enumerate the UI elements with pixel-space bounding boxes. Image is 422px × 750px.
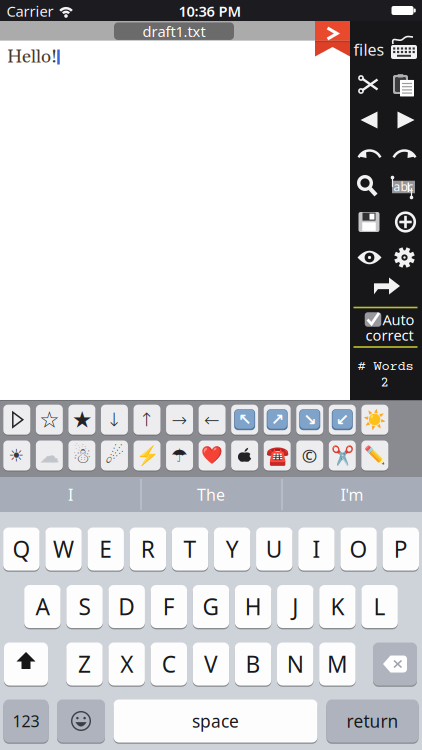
button[interactable]: Move right	[166, 405, 193, 435]
staticText: ⚡	[135, 445, 158, 466]
button[interactable]: Z	[66, 642, 103, 685]
button[interactable]: Y	[214, 527, 250, 570]
button[interactable]: files	[349, 38, 389, 60]
staticText: G	[202, 591, 219, 621]
button[interactable]: Preview	[357, 250, 381, 264]
button[interactable]: 123	[3, 699, 48, 742]
button[interactable]: Bookmark	[315, 21, 350, 57]
button[interactable]: Emoji	[57, 699, 105, 742]
button[interactable]: Favorite	[36, 405, 63, 435]
button[interactable]: Scissors	[329, 440, 356, 470]
button[interactable]: Move down	[101, 405, 128, 435]
staticText: ☀️	[363, 409, 386, 430]
button[interactable]: space	[113, 699, 317, 742]
button[interactable]: I	[5, 478, 135, 511]
button[interactable]: Brightness	[361, 405, 388, 435]
button[interactable]: Jump up right	[264, 405, 291, 435]
staticText: L	[374, 591, 386, 621]
button[interactable]: Add	[394, 211, 416, 233]
staticText: X	[120, 649, 133, 679]
button[interactable]: Umbrella	[166, 440, 193, 470]
button[interactable]: I	[298, 527, 335, 570]
button[interactable]: Heart	[199, 440, 226, 470]
button[interactable]: R	[130, 527, 166, 570]
staticText: ✂️	[331, 445, 354, 466]
button[interactable]: Telephone	[264, 440, 291, 470]
button[interactable]: Previous	[360, 111, 377, 128]
button[interactable]: Settings	[393, 246, 415, 268]
button[interactable]: The	[146, 478, 276, 511]
button[interactable]: C	[151, 642, 187, 685]
button[interactable]: G	[193, 585, 229, 628]
staticText: correct	[365, 325, 413, 345]
button[interactable]: Run	[3, 405, 30, 435]
button[interactable]: A	[24, 585, 61, 628]
button[interactable]: Snowman	[68, 440, 95, 470]
button[interactable]: M	[319, 642, 356, 685]
staticText: ☁	[39, 444, 59, 467]
staticText: E	[99, 534, 112, 564]
staticText: Y	[226, 534, 239, 564]
button[interactable]: K	[319, 585, 356, 628]
button[interactable]: Select word	[391, 175, 416, 200]
button[interactable]: V	[193, 642, 229, 685]
staticText: I	[312, 534, 320, 564]
staticText: ✏️	[364, 446, 386, 465]
button[interactable]: Save	[358, 212, 379, 232]
staticText: ←	[204, 409, 220, 430]
button[interactable]: Favorites	[68, 405, 95, 435]
button[interactable]: B	[235, 642, 271, 685]
button[interactable]: D	[108, 585, 145, 628]
button[interactable]: Q	[3, 527, 40, 570]
button[interactable]: Move up	[133, 405, 160, 435]
button[interactable]: return	[326, 699, 418, 742]
button[interactable]: Extra keys	[389, 33, 419, 59]
button[interactable]: Cut	[358, 75, 380, 93]
staticText: ©	[302, 443, 318, 468]
button[interactable]: Copyright	[296, 440, 323, 470]
staticText: J	[292, 591, 298, 621]
button[interactable]: Auto	[361, 312, 419, 346]
button[interactable]: Undo	[359, 143, 379, 158]
staticText: Carrier	[6, 1, 53, 21]
button[interactable]: U	[256, 527, 292, 570]
button[interactable]: Apple	[231, 440, 258, 470]
button[interactable]: Sun	[3, 440, 30, 470]
staticText: ↙	[336, 411, 349, 429]
staticText: Z	[78, 649, 91, 679]
staticText: draft1.txt	[142, 21, 205, 41]
button[interactable]: F	[151, 585, 187, 628]
button[interactable]: Search	[356, 174, 378, 197]
button[interactable]: P	[382, 527, 419, 570]
staticText: H	[245, 591, 262, 621]
button[interactable]: T	[172, 527, 208, 570]
button[interactable]: Jump down left	[329, 405, 356, 435]
button[interactable]: X	[108, 642, 145, 685]
button[interactable]: Redo	[395, 143, 415, 158]
button[interactable]: Pencil	[361, 440, 388, 470]
button[interactable]: Paste	[393, 74, 415, 97]
button[interactable]: Next	[397, 111, 414, 128]
button[interactable]: S	[66, 585, 103, 628]
button[interactable]: L	[361, 585, 398, 628]
button[interactable]: O	[340, 527, 377, 570]
button[interactable]: I'm	[287, 478, 417, 511]
button[interactable]: draft1.txt	[114, 22, 234, 40]
button[interactable]: E	[87, 527, 124, 570]
staticText: 2	[380, 376, 388, 391]
button[interactable]: Cloud	[36, 440, 63, 470]
button[interactable]: Shift	[4, 642, 48, 685]
button[interactable]: Share	[372, 276, 400, 296]
staticText: O	[350, 534, 368, 564]
button[interactable]: N	[277, 642, 313, 685]
staticText: return	[346, 709, 398, 732]
button[interactable]: Jump up left	[231, 405, 258, 435]
button[interactable]: Delete	[373, 642, 417, 685]
button[interactable]: Lightning	[133, 440, 160, 470]
button[interactable]: W	[45, 527, 82, 570]
button[interactable]: Comet	[101, 440, 128, 470]
button[interactable]: H	[235, 585, 271, 628]
button[interactable]: Move left	[199, 405, 226, 435]
button[interactable]: Jump down right	[296, 405, 323, 435]
button[interactable]: J	[277, 585, 314, 628]
